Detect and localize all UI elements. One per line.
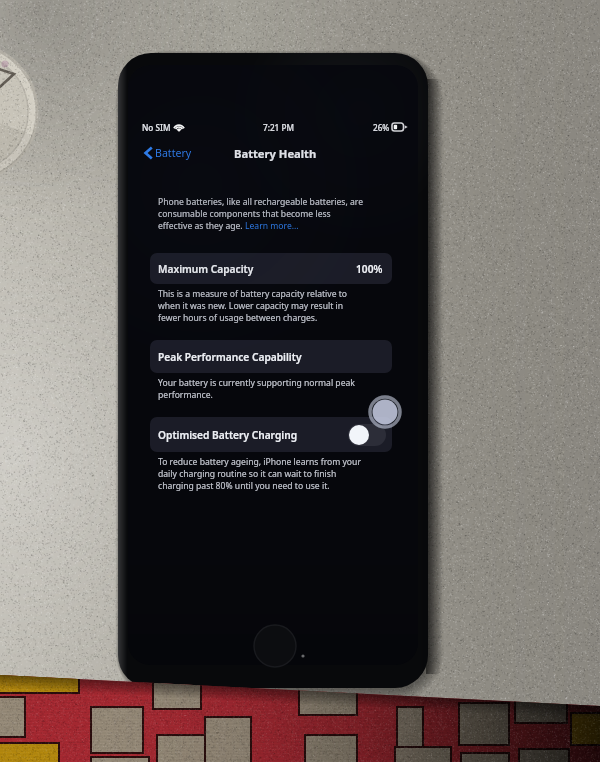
- staticText: effective as they age.: [158, 220, 245, 232]
- staticText: 100%: [356, 262, 383, 276]
- button[interactable]: Learn more...: [245, 220, 299, 232]
- button[interactable]: Optimised Battery Charging toggle: [348, 424, 386, 446]
- staticText: Peak Performance Capability: [158, 350, 302, 364]
- staticText: charging past 80% until you need to use …: [158, 480, 330, 492]
- staticText: fewer hours of usage between charges.: [158, 312, 318, 324]
- staticText: consumable components that become less: [158, 208, 331, 220]
- staticText: Battery: [155, 146, 192, 160]
- staticText: performance.: [158, 389, 213, 401]
- staticText: Your battery is currently supporting nor…: [158, 377, 355, 389]
- button[interactable]: Optimised Battery Charging: [150, 417, 392, 452]
- staticText: Optimised Battery Charging: [158, 428, 298, 442]
- staticText: To reduce battery ageing, iPhone learns …: [158, 456, 361, 468]
- staticText: 7:21 PM: [263, 122, 294, 133]
- staticText: when it was new. Lower capacity may resu…: [158, 300, 344, 312]
- button[interactable]: Maximum Capacity: [150, 253, 392, 284]
- button[interactable]: Peak Performance Capability: [150, 340, 392, 373]
- staticText: This is a measure of battery capacity re…: [158, 288, 348, 300]
- staticText: Phone batteries, like all rechargeable b…: [158, 196, 364, 208]
- staticText: No SIM: [142, 122, 171, 133]
- staticText: 26%: [373, 122, 390, 133]
- button[interactable]: Battery: [143, 143, 194, 163]
- staticText: Battery Health: [234, 146, 317, 161]
- staticText: daily charging routine so it can wait to…: [158, 468, 337, 480]
- staticText: Maximum Capacity: [158, 262, 254, 276]
